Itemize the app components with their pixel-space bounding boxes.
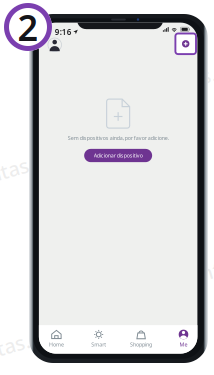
staticText: jonatas.santos15 bbox=[0, 148, 119, 175]
button[interactable]: Adicionar dispositivo bbox=[84, 149, 152, 162]
staticText: Me bbox=[179, 341, 187, 348]
button[interactable]: Profile bbox=[46, 36, 64, 54]
staticText: jonatas.santos15 bbox=[105, 265, 214, 292]
staticText: Adicionar dispositivo bbox=[94, 152, 143, 159]
staticText: Shopping bbox=[130, 341, 152, 348]
staticText: 9:16 bbox=[55, 27, 72, 37]
button[interactable]: Add device bbox=[173, 31, 198, 56]
button[interactable]: Smart bbox=[84, 330, 114, 348]
staticText: jonatas.santos15 bbox=[0, 325, 115, 352]
button[interactable]: Shopping bbox=[126, 330, 156, 348]
button[interactable]: Me bbox=[168, 330, 198, 348]
staticText: 2 bbox=[17, 3, 38, 51]
staticText: Home bbox=[49, 341, 64, 348]
button[interactable]: Home bbox=[41, 330, 71, 348]
staticText: jonatas.santos15 bbox=[140, 58, 214, 85]
staticText: Sem dispositivos ainda, por favor adicio… bbox=[68, 134, 169, 141]
staticText: Smart bbox=[91, 341, 106, 348]
